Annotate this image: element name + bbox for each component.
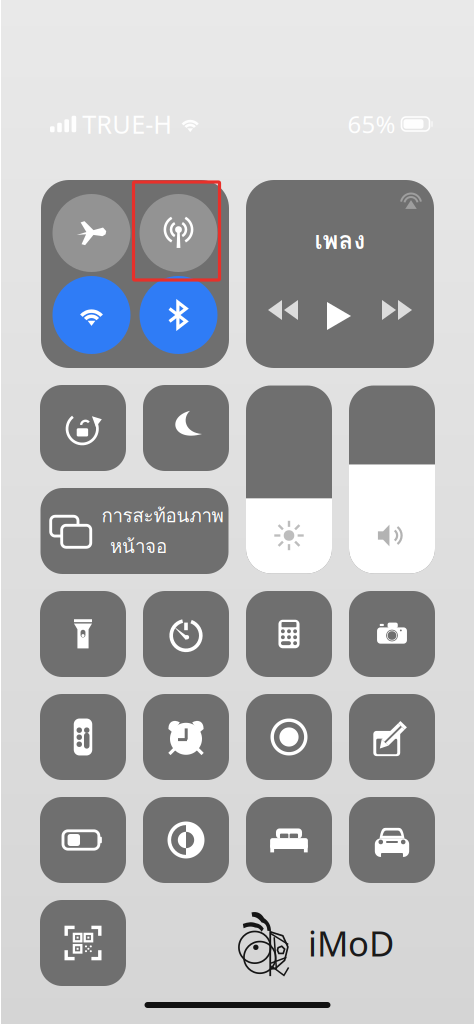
button[interactable] [246,591,332,677]
button[interactable] [143,694,229,780]
button[interactable] [246,694,332,780]
button[interactable] [349,591,435,677]
button[interactable] [40,591,126,677]
staticText: การสะท้อนภาพ [101,501,223,530]
button[interactable]: Previous track [268,304,298,326]
button[interactable] [349,797,435,883]
staticText: 65% [347,108,395,140]
button[interactable] [40,900,126,986]
button[interactable] [139,276,217,354]
button[interactable] [143,797,229,883]
button[interactable] [40,797,126,883]
button[interactable] [40,385,126,471]
button[interactable] [246,385,332,573]
button[interactable] [349,694,435,780]
staticText: หน้าจอ [110,532,167,561]
button[interactable]: การสะท้อนภาพ [40,488,228,574]
button[interactable]: Next track [382,304,412,326]
button[interactable] [139,194,217,272]
button[interactable] [246,797,332,883]
button[interactable] [52,276,130,354]
staticText: TRUE-H [82,107,172,141]
button[interactable] [349,385,435,573]
button[interactable] [143,591,229,677]
button[interactable] [52,194,130,272]
staticText: เพลง [314,222,365,259]
button[interactable]: Play [327,300,352,330]
button[interactable] [40,694,126,780]
button[interactable] [143,385,229,471]
staticText: iMoD [308,920,394,966]
